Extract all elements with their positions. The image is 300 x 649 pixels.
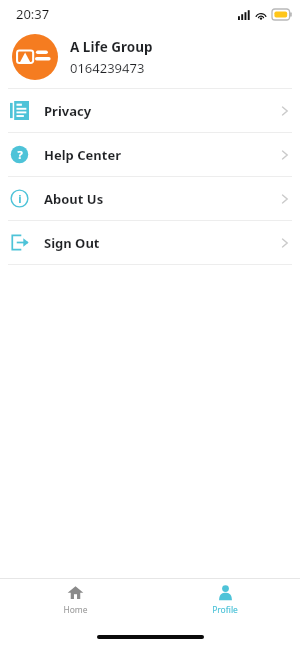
staticText: 20:37 (16, 5, 50, 23)
staticText: Profile (212, 604, 238, 616)
staticText: Help Center (44, 146, 121, 164)
staticText: Privacy (44, 102, 92, 120)
staticText: 0164239473 (70, 59, 145, 77)
staticText: Sign Out (44, 234, 100, 252)
staticText: i (18, 191, 22, 206)
staticText: ? (17, 147, 23, 162)
button[interactable]: i (0, 177, 300, 220)
button[interactable]: Home (0, 579, 150, 625)
staticText: About Us (44, 190, 104, 208)
button[interactable]: ? (0, 133, 300, 176)
button[interactable]: Profile (150, 579, 300, 625)
staticText: Home (63, 604, 88, 616)
button[interactable]: Privacy (0, 89, 300, 132)
staticText: A Life Group (70, 38, 153, 56)
button[interactable]: Sign Out (0, 221, 300, 264)
